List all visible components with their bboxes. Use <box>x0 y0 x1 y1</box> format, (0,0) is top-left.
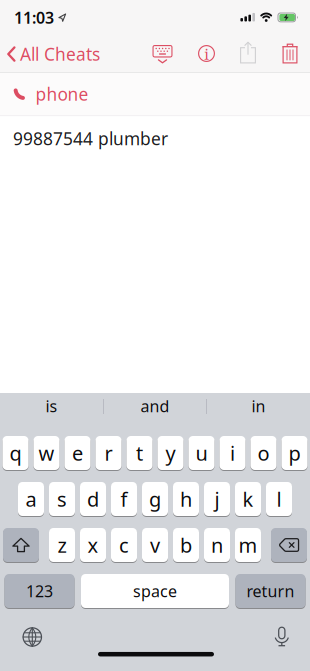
button[interactable]: is <box>0 393 103 419</box>
button[interactable]: Next Keyboard <box>22 627 42 647</box>
button[interactable]: g <box>142 482 168 516</box>
staticText: t <box>136 440 143 466</box>
button[interactable]: space <box>81 574 229 608</box>
staticText: n <box>211 532 223 558</box>
staticText: i <box>204 44 209 64</box>
button[interactable]: Dictate <box>274 626 289 646</box>
staticText: g <box>149 486 161 512</box>
staticText: p <box>288 440 300 466</box>
staticText: space <box>133 580 177 602</box>
button[interactable]: k <box>235 482 261 516</box>
staticText: y <box>165 440 175 466</box>
staticText: d <box>87 486 99 512</box>
button[interactable]: e <box>64 436 90 470</box>
button[interactable]: t <box>126 436 152 470</box>
button[interactable]: return <box>235 574 305 608</box>
button[interactable]: 123 <box>4 574 74 608</box>
button[interactable]: z <box>49 528 75 562</box>
button[interactable]: in <box>207 393 310 419</box>
staticText: q <box>9 440 21 466</box>
button[interactable]: l <box>266 482 292 516</box>
staticText: s <box>57 486 67 512</box>
button[interactable]: j <box>204 482 230 516</box>
button[interactable]: y <box>157 436 183 470</box>
button[interactable]: phone <box>0 73 310 115</box>
staticText: f <box>120 486 127 512</box>
staticText: a <box>25 486 36 512</box>
staticText: in <box>251 395 265 417</box>
button[interactable]: Dismiss Keyboard <box>152 45 172 63</box>
button[interactable]: q <box>2 436 28 470</box>
button[interactable]: f <box>111 482 137 516</box>
button[interactable]: b <box>173 528 199 562</box>
button[interactable]: x <box>80 528 106 562</box>
staticText: b <box>180 532 192 558</box>
button[interactable]: h <box>173 482 199 516</box>
button[interactable]: u <box>188 436 214 470</box>
button[interactable]: w <box>33 436 59 470</box>
staticText: r <box>104 440 112 466</box>
staticText: 123 <box>26 580 53 602</box>
button[interactable]: Share <box>240 41 256 63</box>
staticText: m <box>238 532 257 558</box>
button[interactable]: a <box>18 482 44 516</box>
button[interactable]: r <box>95 436 121 470</box>
staticText: i <box>230 440 235 466</box>
staticText: e <box>72 440 83 466</box>
staticText: and <box>140 395 169 417</box>
staticText: h <box>180 486 192 512</box>
button[interactable]: s <box>49 482 75 516</box>
staticText: is <box>45 395 57 417</box>
button[interactable]: n <box>204 528 230 562</box>
button[interactable]: i <box>219 436 245 470</box>
button[interactable]: p <box>281 436 307 470</box>
staticText: phone <box>35 82 88 105</box>
staticText: x <box>87 532 98 558</box>
button[interactable]: and <box>103 393 207 419</box>
staticText: c <box>119 532 129 558</box>
staticText: All Cheats <box>20 42 100 65</box>
button[interactable]: v <box>142 528 168 562</box>
staticText: 11:03 <box>14 7 54 28</box>
staticText: l <box>276 486 281 512</box>
button[interactable]: d <box>80 482 106 516</box>
button[interactable]: All Cheats <box>7 42 100 65</box>
button[interactable]: c <box>111 528 137 562</box>
staticText: j <box>214 486 219 512</box>
button[interactable]: m <box>235 528 261 562</box>
staticText: w <box>38 440 54 466</box>
staticText: return <box>246 580 294 602</box>
button[interactable]: Shift <box>3 528 39 562</box>
button[interactable]: Delete <box>271 528 307 562</box>
button[interactable]: Info <box>198 45 215 62</box>
staticText: 99887544 plumber <box>13 127 168 150</box>
staticText: z <box>57 532 66 558</box>
staticText: v <box>150 532 160 558</box>
staticText: k <box>242 486 253 512</box>
staticText: u <box>195 440 207 466</box>
staticText: o <box>257 440 269 466</box>
button[interactable]: o <box>250 436 276 470</box>
button[interactable]: Delete <box>282 43 298 63</box>
